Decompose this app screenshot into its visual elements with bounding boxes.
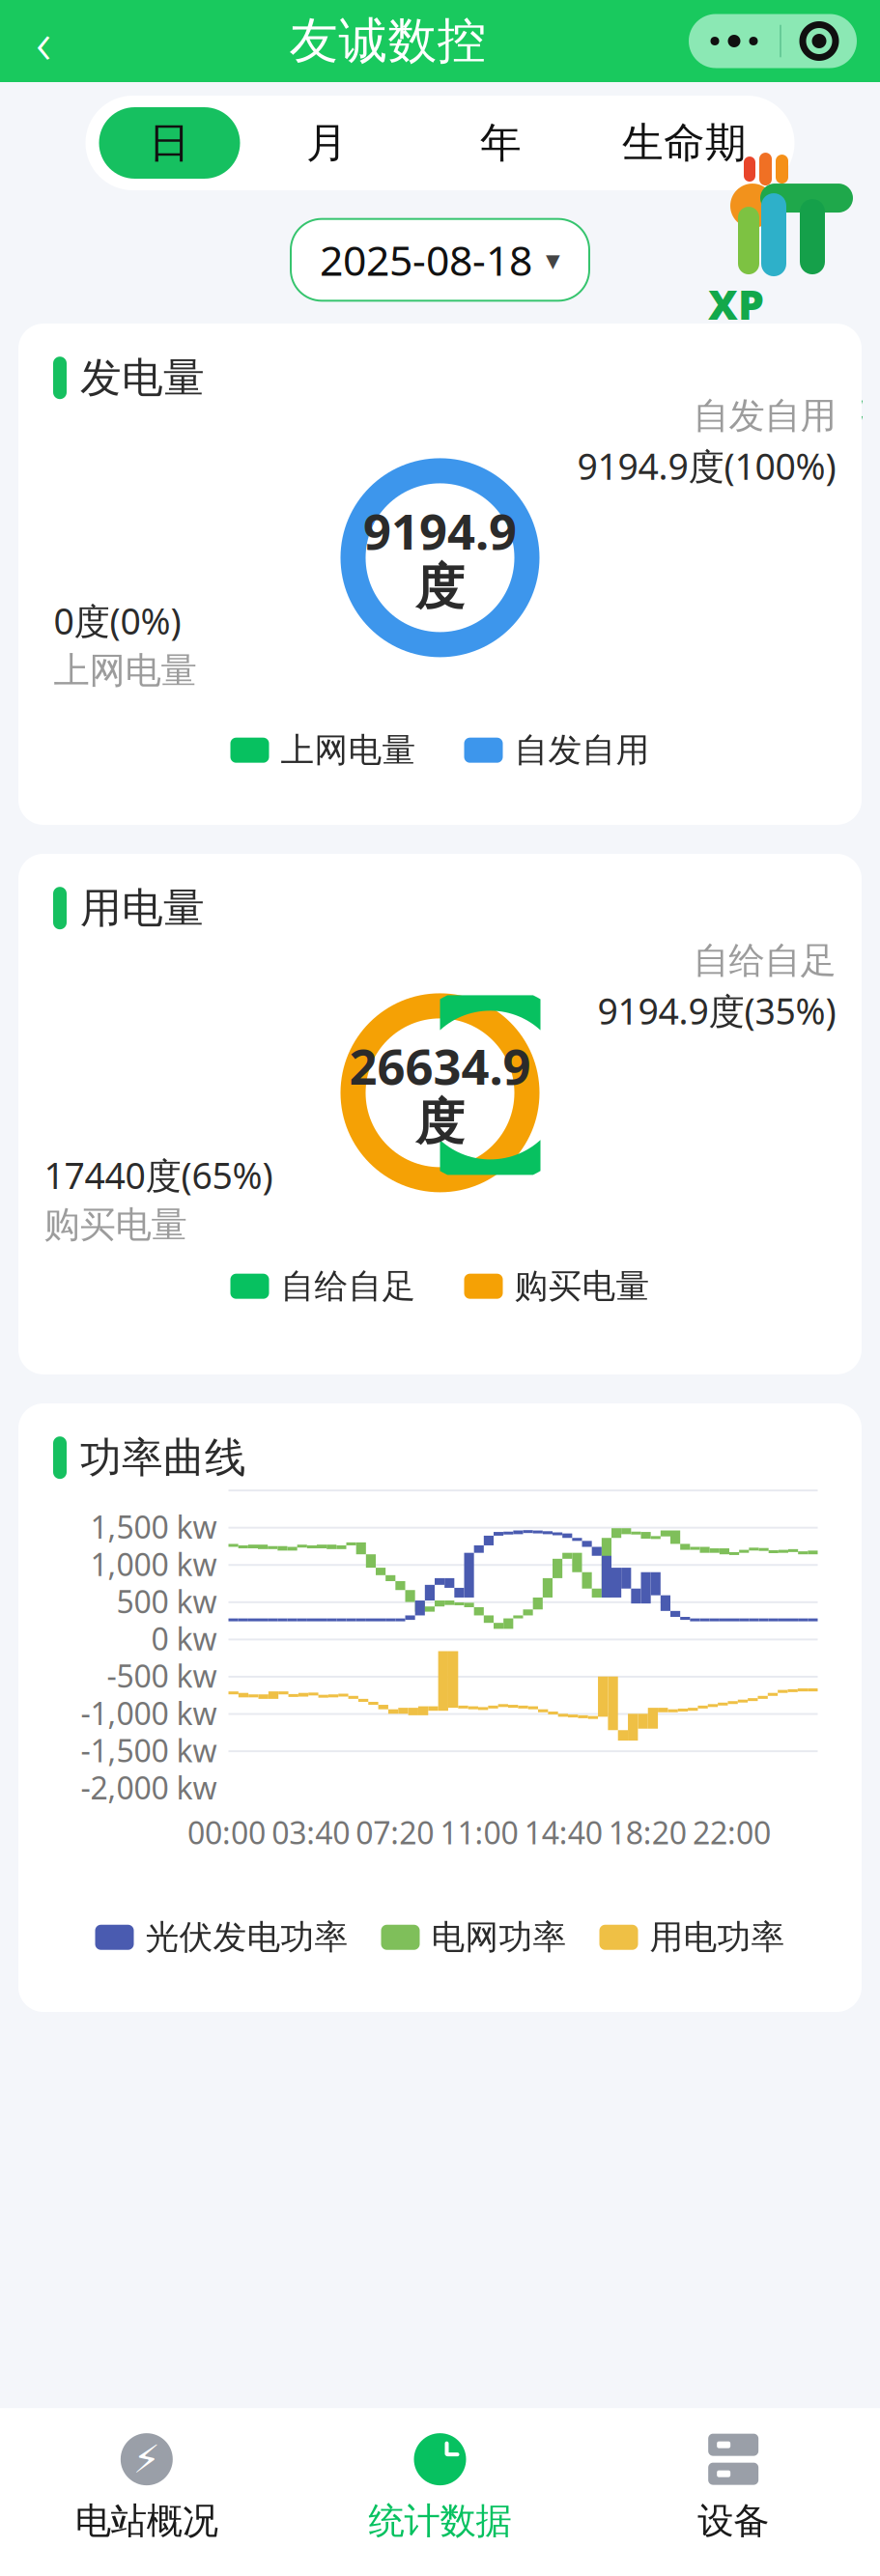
staticText: 功率曲线 (80, 1432, 246, 1483)
staticText: 旭普太阳能 (693, 388, 862, 429)
staticText: 度 (415, 1092, 465, 1152)
staticText: -500 kw (107, 1655, 217, 1696)
button[interactable]: More (689, 14, 780, 68)
button[interactable]: 2025-08-18 (291, 219, 589, 301)
staticText: 购买电量 (44, 1203, 187, 1247)
staticText: 电网功率 (431, 1917, 567, 1958)
staticText: 00:00 (187, 1812, 266, 1853)
staticText: 2025-08-18 (320, 232, 532, 287)
staticText: 设备 (698, 2499, 769, 2543)
button[interactable]: 生命期 (588, 107, 781, 179)
staticText: -1,500 kw (81, 1730, 217, 1771)
button[interactable]: Back (0, 0, 87, 82)
button[interactable]: 统计数据 (293, 2433, 587, 2543)
staticText: 9194.9度(35%) (597, 987, 836, 1035)
staticText: 自发自用 (514, 730, 650, 771)
staticText: ⚡︎ (133, 2437, 160, 2481)
staticText: 日 (149, 118, 190, 168)
staticText: 用电功率 (650, 1917, 785, 1958)
staticText: 电站概况 (75, 2499, 218, 2543)
button[interactable]: 年 (414, 107, 588, 179)
staticText: 度 (415, 557, 465, 617)
staticText: ▾ (546, 244, 560, 276)
staticText: 03:40 (272, 1812, 350, 1853)
staticText: -1,000 kw (81, 1693, 217, 1734)
staticText: 11:00 (440, 1812, 518, 1853)
staticText: 22:00 (693, 1812, 771, 1853)
button[interactable]: ⚡︎ (0, 2433, 293, 2543)
staticText: 自给自足 (693, 939, 836, 983)
staticText: 发电量 (80, 353, 205, 403)
staticText: 07:20 (356, 1812, 434, 1853)
button[interactable]: 设备 (587, 2433, 880, 2543)
button[interactable]: 月 (240, 107, 414, 179)
staticText: 1,000 kw (90, 1543, 217, 1585)
staticText: 月 (306, 118, 348, 168)
staticText: 自给自足 (281, 1266, 416, 1307)
button[interactable]: Close (781, 14, 857, 68)
staticText: 友诚数控 (289, 11, 486, 71)
staticText: 500 kw (116, 1581, 217, 1622)
staticText: 生命期 (622, 118, 747, 168)
staticText: ‹ (36, 2, 51, 80)
staticText: 统计数据 (369, 2499, 511, 2543)
staticText: 光伏发电功率 (145, 1917, 348, 1958)
staticText: 18:20 (608, 1812, 687, 1853)
staticText: 上网电量 (281, 730, 416, 771)
staticText: 1,500 kw (90, 1506, 217, 1547)
staticText: -2,000 kw (81, 1767, 217, 1808)
staticText: 上网电量 (54, 648, 197, 693)
staticText: 26634.9 (349, 1033, 531, 1098)
staticText: 9194.9 (363, 498, 517, 563)
staticText: XP SOLAR (708, 276, 847, 386)
staticText: 购买电量 (514, 1266, 650, 1307)
staticText: 0度(0%) (54, 597, 181, 645)
button[interactable]: 日 (99, 107, 240, 179)
staticText: 0 kw (151, 1618, 217, 1659)
staticText: 14:40 (524, 1812, 602, 1853)
staticText: 年 (480, 118, 522, 168)
staticText: 自发自用 (693, 394, 836, 438)
staticText: 9194.9度(100%) (577, 442, 836, 490)
staticText: 用电量 (80, 883, 205, 933)
staticText: 17440度(65%) (44, 1151, 273, 1199)
